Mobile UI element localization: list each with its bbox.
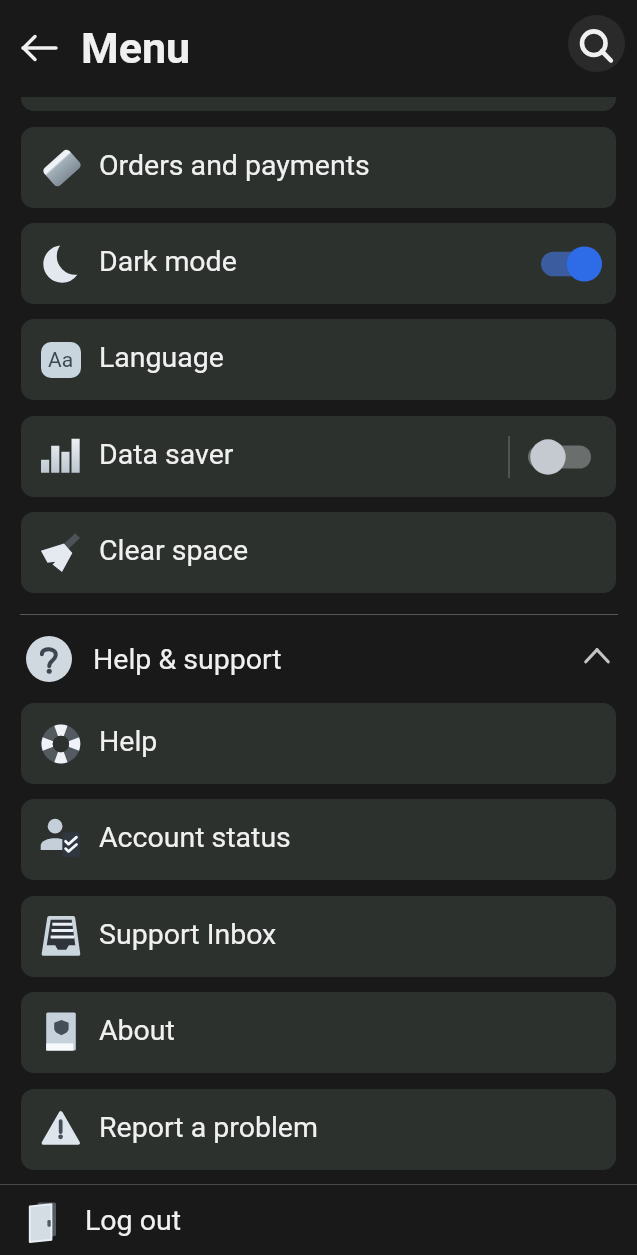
button[interactable]: Data saver [21,416,616,497]
button[interactable]: Aa [21,319,616,400]
staticText: Clear space [99,534,249,567]
staticText: Log out [85,1204,181,1237]
button[interactable]: Search [568,15,625,72]
button[interactable]: Data saver off [528,435,591,479]
staticText: About [99,1014,175,1047]
staticText: Account status [99,821,291,854]
button[interactable]: Account status [21,799,616,880]
button[interactable]: Back [15,24,63,72]
button[interactable]: Help [21,703,616,784]
staticText: Aa [48,348,74,373]
button[interactable]: Support Inbox [21,896,616,977]
staticText: Data saver [99,438,234,471]
staticText: Help [99,725,158,758]
button[interactable]: Help & support [0,615,637,703]
button[interactable]: Clear space [21,512,616,593]
staticText: Orders and payments [99,149,370,182]
button[interactable]: Dark mode on [541,242,602,286]
button[interactable]: Orders and payments [21,127,616,208]
staticText: Dark mode [99,245,237,278]
staticText: Menu [81,23,191,73]
button[interactable]: Report a problem [21,1089,616,1170]
staticText: Language [99,341,224,374]
button[interactable]: Log out [0,1185,637,1255]
button[interactable]: Dark mode [21,223,616,304]
button[interactable]: About [21,992,616,1073]
staticText: Support Inbox [99,918,277,951]
staticText: Report a problem [99,1111,318,1144]
staticText: Help & support [93,643,282,676]
